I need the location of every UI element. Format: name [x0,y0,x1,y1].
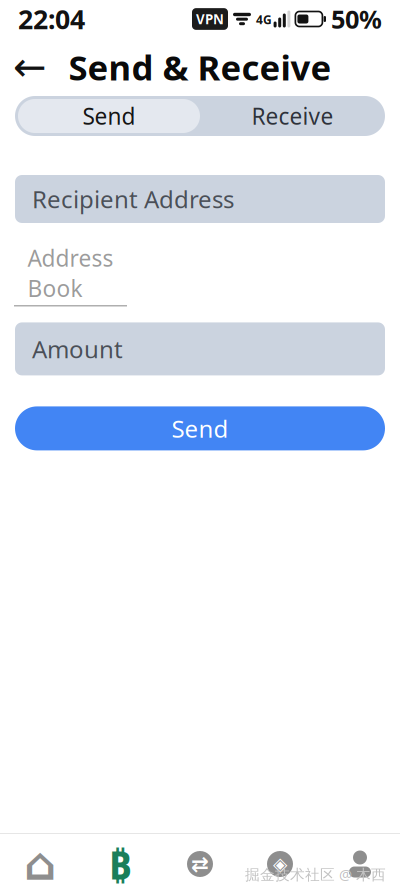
staticText: 22:04 [18,1,85,37]
button[interactable]: Receive [200,96,385,136]
button[interactable]: Amount [15,322,385,375]
staticText: Address Book [27,243,113,303]
staticText: ◈ [273,853,287,875]
staticText: Send [171,412,228,444]
staticText: ⌂ [24,838,56,890]
button[interactable]: Send [15,406,385,450]
staticText: 掘金技术社区 @ 木西 [245,864,386,884]
staticText: VPN [196,10,224,28]
staticText: Receive [251,101,333,131]
staticText: Send [82,101,135,131]
staticText: ← [13,44,47,90]
button[interactable]: Bitcoin [80,834,160,894]
staticText: Recipient Address [32,183,234,215]
button[interactable]: Swap [160,834,240,894]
button[interactable]: Send [15,96,200,136]
staticText: Amount [32,333,123,365]
button[interactable]: Discover [240,834,320,894]
staticText: ⇄ [191,852,209,876]
button[interactable]: Recipient Address [15,175,385,223]
staticText: 50% [331,2,382,36]
staticText: 4G [256,12,272,27]
staticText: ₿ [108,837,131,890]
button[interactable]: Profile [320,834,400,894]
button[interactable]: Address Book [14,243,127,306]
button[interactable]: Home [0,834,80,894]
button[interactable]: Back [8,45,52,89]
staticText: Send & Receive [68,44,331,90]
